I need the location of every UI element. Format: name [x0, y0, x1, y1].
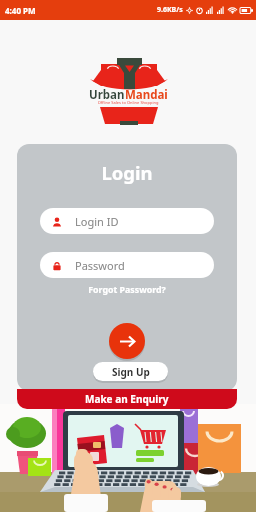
- staticText: Login ID: [75, 214, 119, 229]
- button[interactable]: Sign Up: [93, 362, 168, 381]
- button[interactable]: Sign In: [109, 323, 145, 359]
- button[interactable]: Password: [40, 252, 214, 278]
- staticText: Login: [17, 160, 237, 185]
- staticText: Sign Up: [112, 365, 150, 379]
- staticText: Make an Enquiry: [85, 392, 169, 406]
- staticText: Password: [75, 258, 125, 273]
- staticText: Forgot Password?: [17, 284, 237, 296]
- staticText: 4:40 PM: [5, 5, 36, 16]
- staticText: Urban: [89, 87, 125, 103]
- staticText: Offline Sales to Online Shopping: [0, 100, 256, 105]
- staticText: Mandai: [125, 87, 168, 103]
- button[interactable]: Make an Enquiry: [17, 389, 237, 409]
- button[interactable]: Login ID: [40, 208, 214, 234]
- staticText: 9.6KB/s: [157, 5, 183, 15]
